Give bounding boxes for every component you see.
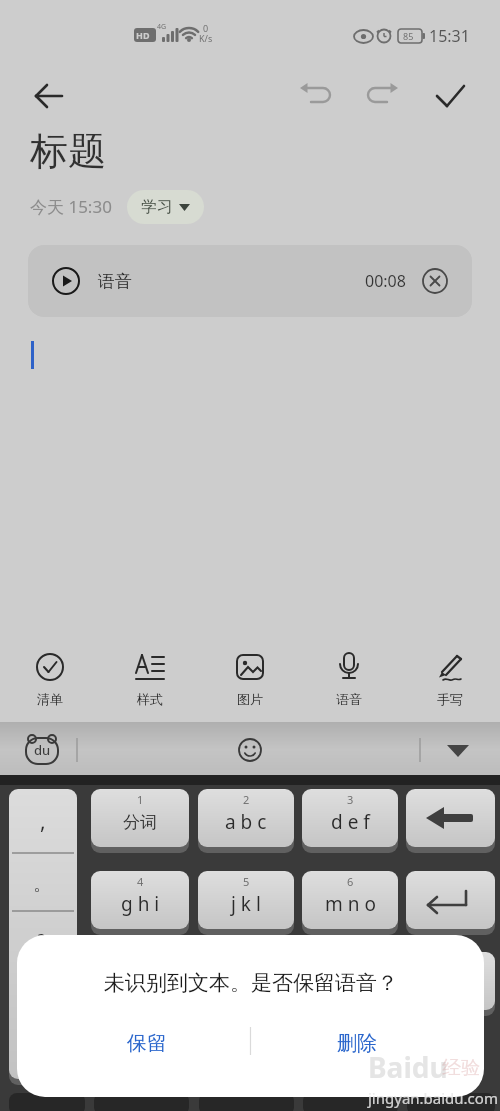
staticText: 3 <box>347 792 354 807</box>
staticText: a b c <box>225 809 267 835</box>
staticText: 15:31 <box>429 25 470 47</box>
button[interactable]: 语音 <box>28 245 472 317</box>
staticText: 5 <box>243 874 250 889</box>
staticText: jingyan.baidu.com <box>368 1088 498 1108</box>
staticText: 4G <box>157 22 167 32</box>
staticText: 4 <box>137 874 144 889</box>
staticText: p q r s <box>117 974 164 996</box>
staticText: 00:08 <box>365 270 406 292</box>
staticText: 85 <box>403 30 414 42</box>
button[interactable]: du <box>20 730 64 770</box>
button[interactable] <box>422 268 448 294</box>
staticText: 分词 <box>123 812 157 833</box>
staticText: m n o <box>325 891 376 917</box>
button[interactable]: , <box>9 789 77 1085</box>
staticText: Baidu <box>368 1048 448 1086</box>
button[interactable]: 7 <box>91 952 189 1016</box>
staticText: 删除 <box>337 1031 377 1056</box>
staticText: 2 <box>243 792 250 807</box>
button[interactable] <box>430 74 472 116</box>
button[interactable]: 4 <box>91 871 189 935</box>
staticText: HD <box>136 29 150 41</box>
button[interactable]: 9 <box>302 952 398 1016</box>
staticText: 手写 <box>437 691 463 707</box>
button[interactable] <box>358 74 400 116</box>
staticText: 标题 <box>30 127 106 175</box>
staticText: K/s <box>199 32 213 44</box>
staticText: 保留 <box>127 1031 167 1056</box>
button[interactable] <box>406 789 495 853</box>
staticText: 1 <box>137 792 144 807</box>
staticText: 。 <box>33 873 51 896</box>
staticText: j k l <box>231 891 261 917</box>
staticText: 学习 <box>141 197 173 217</box>
button[interactable]: 图片 <box>215 651 285 707</box>
button[interactable] <box>298 74 340 116</box>
staticText: 6 <box>347 874 354 889</box>
staticText: 0 <box>203 22 209 34</box>
staticText: ? <box>38 929 45 951</box>
button[interactable]: 3 <box>302 789 398 853</box>
staticText: 经验 <box>442 1056 480 1080</box>
button[interactable]: 8 <box>198 952 294 1016</box>
button[interactable] <box>406 952 495 1016</box>
staticText: 样式 <box>137 691 163 707</box>
button[interactable]: 语音 <box>314 651 384 707</box>
button[interactable]: 学习 <box>127 190 204 224</box>
staticText: 语音 <box>336 691 362 707</box>
button[interactable]: 2 <box>198 789 294 853</box>
button[interactable]: 手写 <box>415 651 485 707</box>
staticText: w x y z <box>325 974 375 996</box>
staticText: 今天 15:30 <box>30 195 112 218</box>
button[interactable] <box>406 871 495 935</box>
button[interactable]: 样式 <box>115 651 185 707</box>
staticText: 未识别到文本。是否保留语音？ <box>104 970 398 996</box>
staticText: , <box>40 807 46 836</box>
staticText: 清单 <box>37 691 63 707</box>
button[interactable]: 5 <box>198 871 294 935</box>
button[interactable] <box>438 732 478 768</box>
button[interactable]: 保留 <box>77 1020 217 1066</box>
staticText: 语音 <box>98 271 132 292</box>
button[interactable]: 清单 <box>15 651 85 707</box>
staticText: d e f <box>331 809 370 835</box>
button[interactable]: 删除 <box>287 1020 427 1066</box>
button[interactable]: 1 <box>91 789 189 853</box>
staticText: t u v <box>227 972 266 998</box>
button[interactable]: 6 <box>302 871 398 935</box>
button[interactable] <box>26 74 70 118</box>
staticText: 图片 <box>237 691 263 707</box>
staticText: du <box>34 741 51 759</box>
staticText: g h i <box>121 891 160 917</box>
